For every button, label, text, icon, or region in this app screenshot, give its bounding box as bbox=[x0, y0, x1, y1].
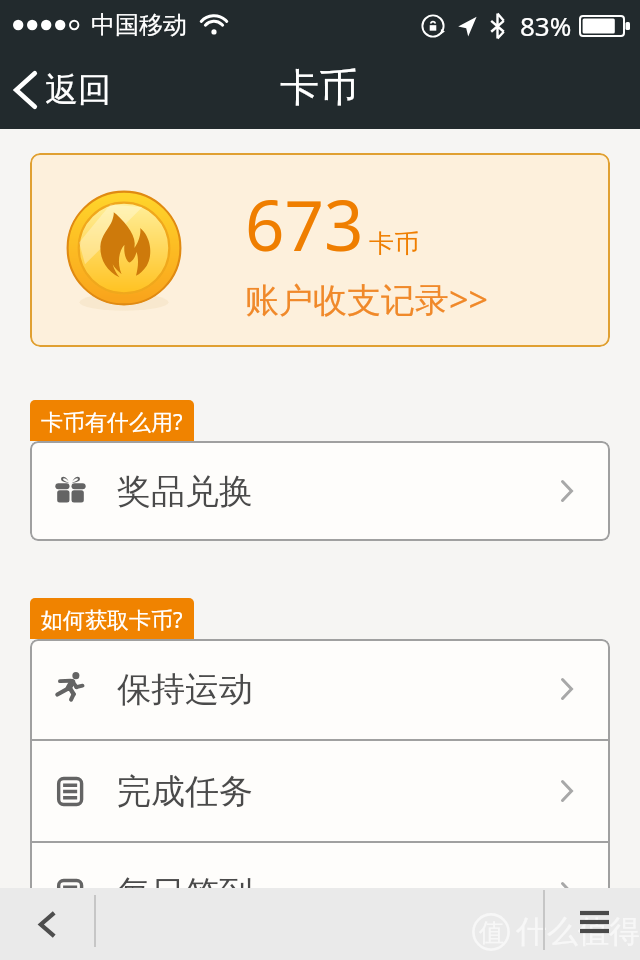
staticText: 卡币 bbox=[369, 228, 419, 259]
button[interactable]: 每日签到 bbox=[30, 843, 610, 943]
staticText: 奖品兑换 bbox=[117, 470, 253, 513]
button[interactable]: 账户收支记录>> bbox=[239, 270, 494, 328]
staticText: 账户收支记录>> bbox=[245, 276, 488, 322]
button[interactable]: 673 bbox=[30, 153, 610, 347]
staticText: 保持运动 bbox=[117, 668, 253, 711]
button[interactable]: Menu bbox=[568, 899, 620, 945]
staticText: 中国移动 bbox=[91, 10, 187, 40]
button[interactable]: 保持运动 bbox=[30, 639, 610, 739]
staticText: 每日签到 bbox=[117, 872, 253, 915]
button[interactable]: Back bbox=[21, 898, 73, 950]
staticText: 卡币有什么用? bbox=[41, 406, 183, 436]
button[interactable]: 如何获取卡币? bbox=[30, 598, 194, 639]
button[interactable]: 奖品兑换 bbox=[30, 441, 610, 541]
staticText: 值 bbox=[479, 917, 504, 948]
staticText: 什么值得买 bbox=[516, 912, 640, 951]
staticText: 完成任务 bbox=[117, 770, 253, 813]
button[interactable]: 完成任务 bbox=[30, 741, 610, 841]
button[interactable]: 卡币有什么用? bbox=[30, 400, 194, 441]
staticText: 673 bbox=[245, 177, 364, 271]
staticText: 返回 bbox=[45, 69, 111, 111]
staticText: 如何获取卡币? bbox=[41, 604, 183, 634]
staticText: 83% bbox=[520, 8, 572, 43]
button[interactable]: 返回 bbox=[0, 61, 125, 119]
staticText: 卡币 bbox=[280, 63, 358, 112]
